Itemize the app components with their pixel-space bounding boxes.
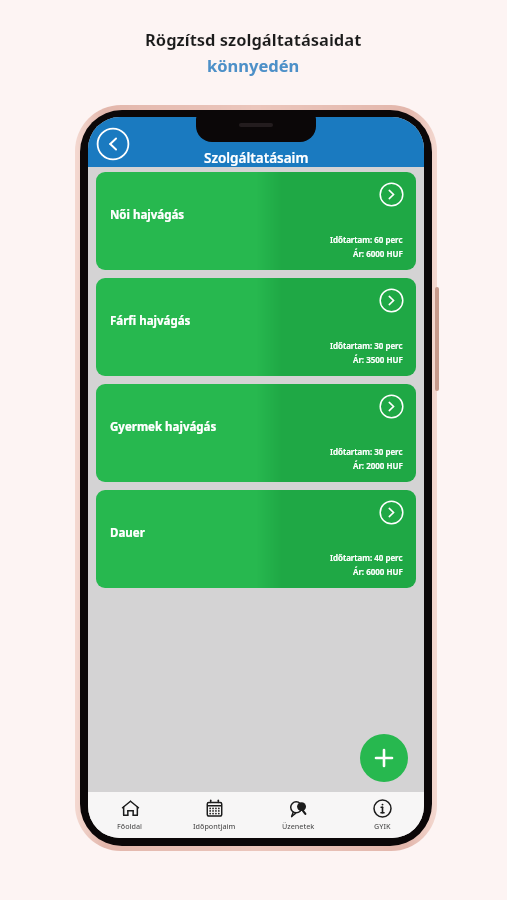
staticText: Gyermek hajvágás: [110, 419, 217, 435]
staticText: Fárfi hajvágás: [110, 313, 191, 329]
button[interactable]: Back: [96, 127, 130, 161]
staticText: Rögzítsd szolgáltatásaidat: [145, 28, 362, 50]
staticText: Női hajvágás: [110, 207, 185, 223]
button[interactable]: Dauer: [96, 490, 416, 588]
staticText: Időtartam: 30 perc: [330, 446, 403, 457]
button[interactable]: Gyermek hajvágás: [96, 384, 416, 482]
staticText: Főoldal: [117, 821, 143, 831]
staticText: Ár: 6000 HUF: [353, 566, 403, 577]
button[interactable]: Női hajvágás: [96, 172, 416, 270]
button[interactable]: Főoldal: [88, 799, 172, 831]
staticText: Szolgáltatásaim: [204, 149, 309, 167]
staticText: Időtartam: 30 perc: [330, 340, 403, 351]
staticText: könnyedén: [207, 54, 300, 76]
staticText: GYIK: [374, 821, 391, 831]
staticText: Dauer: [110, 525, 145, 541]
staticText: Üzenetek: [282, 821, 315, 831]
button[interactable]: Időpontjaim: [172, 799, 256, 831]
button[interactable]: GYIK: [340, 799, 424, 831]
staticText: Ár: 3500 HUF: [353, 354, 403, 365]
staticText: Időpontjaim: [193, 821, 236, 831]
staticText: Időtartam: 40 perc: [330, 552, 403, 563]
button[interactable]: Üzenetek: [256, 799, 340, 831]
button[interactable]: Fárfi hajvágás: [96, 278, 416, 376]
staticText: Ár: 6000 HUF: [353, 248, 403, 259]
staticText: Ár: 2000 HUF: [353, 460, 403, 471]
staticText: Időtartam: 60 perc: [330, 234, 403, 245]
button[interactable]: Add service: [360, 734, 408, 782]
